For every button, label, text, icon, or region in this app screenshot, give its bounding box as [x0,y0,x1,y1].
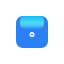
button[interactable]: App icon [16,16,48,48]
